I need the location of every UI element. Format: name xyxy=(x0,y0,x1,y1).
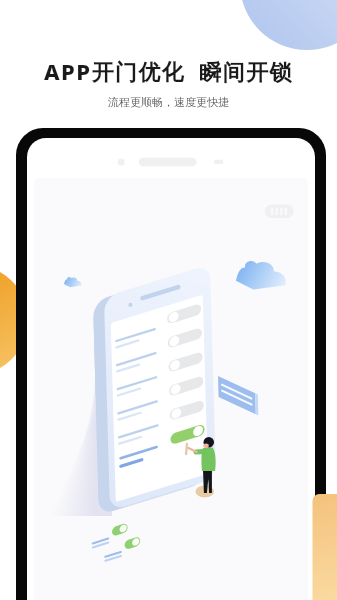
staticText: 流程更顺畅，速度更快捷 xyxy=(108,95,229,109)
staticText: APP开门优化 瞬间开锁 xyxy=(44,56,293,86)
